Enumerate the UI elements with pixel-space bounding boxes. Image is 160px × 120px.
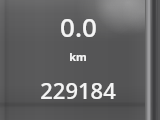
- button[interactable]: Trip distance 0.0 kilometres, tap to res…: [0, 4, 160, 70]
- button[interactable]: Odometer 229184 kilometres: [0, 72, 160, 106]
- staticText: 0.0: [60, 9, 97, 44]
- staticText: km: [69, 49, 87, 64]
- staticText: 229184: [40, 75, 116, 105]
